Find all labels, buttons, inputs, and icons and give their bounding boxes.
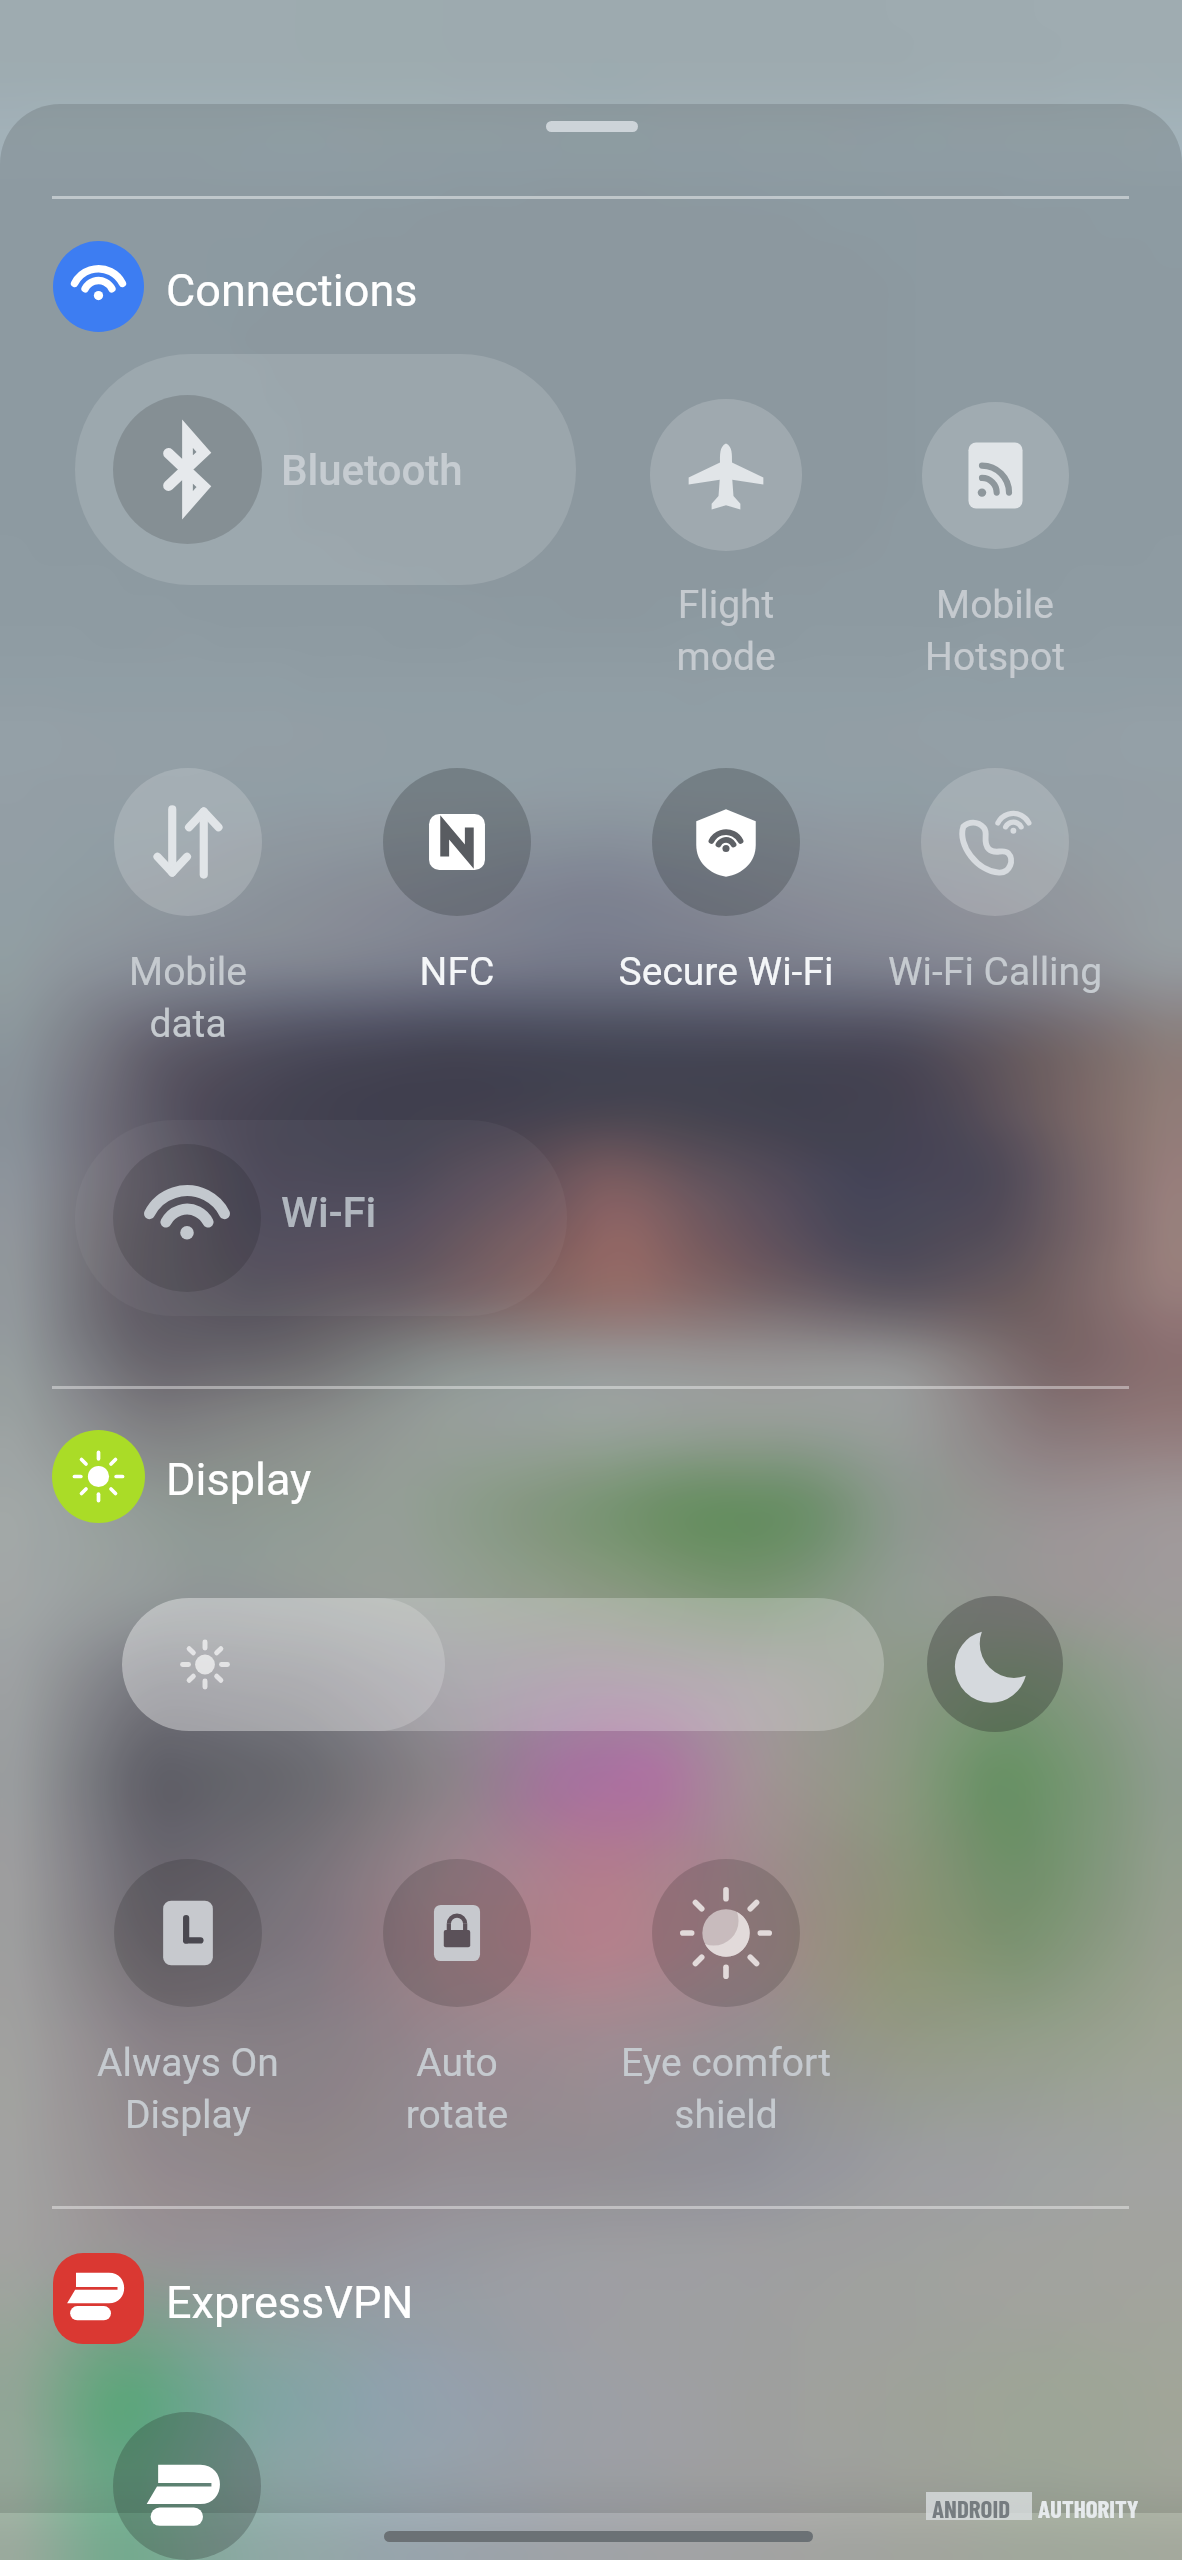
- staticText: Bluetooth: [281, 446, 463, 495]
- button[interactable]: ExpressVPN tile: [113, 2412, 261, 2560]
- staticText: NFC: [237, 949, 677, 995]
- staticText: Auto rotate: [237, 2040, 677, 2138]
- staticText: Eye comfort shield: [506, 2040, 946, 2138]
- button[interactable]: Mobile data: [114, 768, 262, 916]
- staticText: Secure Wi-Fi: [506, 949, 946, 995]
- button[interactable]: Wi-Fi: [75, 1120, 567, 1316]
- staticText: Wi-Fi: [281, 1188, 377, 1237]
- staticText: Always On Display: [0, 2040, 408, 2138]
- button[interactable]: NFC: [383, 768, 531, 916]
- button[interactable]: Eye comfort shield: [652, 1859, 800, 2007]
- button[interactable]: Always On Display: [114, 1859, 262, 2007]
- staticText: ANDROID: [932, 2493, 1011, 2523]
- button[interactable]: Connections settings: [53, 241, 144, 332]
- staticText: AUTHORITY: [1038, 2493, 1139, 2523]
- button[interactable]: ExpressVPN settings: [53, 2253, 144, 2344]
- button[interactable]: Display settings: [52, 1430, 145, 1523]
- staticText: Wi-Fi Calling: [775, 949, 1182, 995]
- button[interactable]: Wi-Fi Calling: [921, 768, 1069, 916]
- staticText: Flight mode: [506, 582, 946, 680]
- staticText: Mobile data: [0, 949, 408, 1047]
- button[interactable]: Flight mode: [650, 399, 802, 551]
- button[interactable]: Secure Wi-Fi: [652, 768, 800, 916]
- staticText: ExpressVPN: [166, 2276, 414, 2329]
- staticText: Mobile Hotspot: [775, 582, 1182, 680]
- button[interactable]: Brightness: [122, 1598, 884, 1731]
- staticText: Display: [166, 1453, 312, 1506]
- staticText: Connections: [166, 264, 418, 317]
- button[interactable]: Bluetooth: [75, 354, 576, 585]
- button[interactable]: Auto rotate: [383, 1859, 531, 2007]
- button[interactable]: Mobile Hotspot: [922, 402, 1069, 549]
- button[interactable]: Dark mode: [927, 1596, 1063, 1732]
